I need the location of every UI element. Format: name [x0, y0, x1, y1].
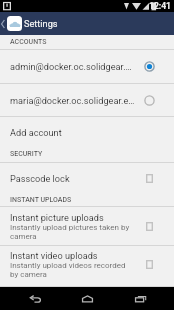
- button[interactable]: Back: [17, 287, 53, 310]
- button[interactable]: Recent apps: [122, 287, 158, 310]
- staticText: maria@docker.oc.solidgear.es…: [10, 95, 135, 106]
- button[interactable]: maria@docker.oc.solidgear.es…: [0, 84, 174, 116]
- staticText: Instant picture uploads: [10, 212, 104, 223]
- staticText: MORE: [10, 285, 30, 287]
- staticText: Instant video uploads: [10, 250, 98, 261]
- staticText: Settings: [24, 18, 58, 29]
- staticText: Instantly upload videos recorded by came…: [10, 261, 134, 279]
- button[interactable]: Add account: [0, 117, 174, 147]
- staticText: Instantly upload pictures taken by camer…: [10, 223, 134, 241]
- button[interactable]: Instant video uploads: [0, 246, 174, 282]
- staticText: ACCOUNTS: [10, 38, 47, 46]
- staticText: 12:41: [149, 1, 171, 11]
- button[interactable]: admin@docker.oc.solidgear.e…: [0, 50, 174, 83]
- button[interactable]: Passcode lock: [0, 163, 174, 193]
- staticText: Passcode lock: [10, 173, 70, 184]
- button[interactable]: Home: [69, 287, 105, 310]
- button[interactable]: Navigate up: [0, 12, 22, 35]
- staticText: INSTANT UPLOADS: [10, 196, 72, 204]
- staticText: Add account: [10, 127, 62, 138]
- button[interactable]: Instant picture uploads: [0, 207, 174, 245]
- staticText: admin@docker.oc.solidgear.e…: [10, 61, 135, 72]
- staticText: SECURITY: [10, 150, 43, 158]
